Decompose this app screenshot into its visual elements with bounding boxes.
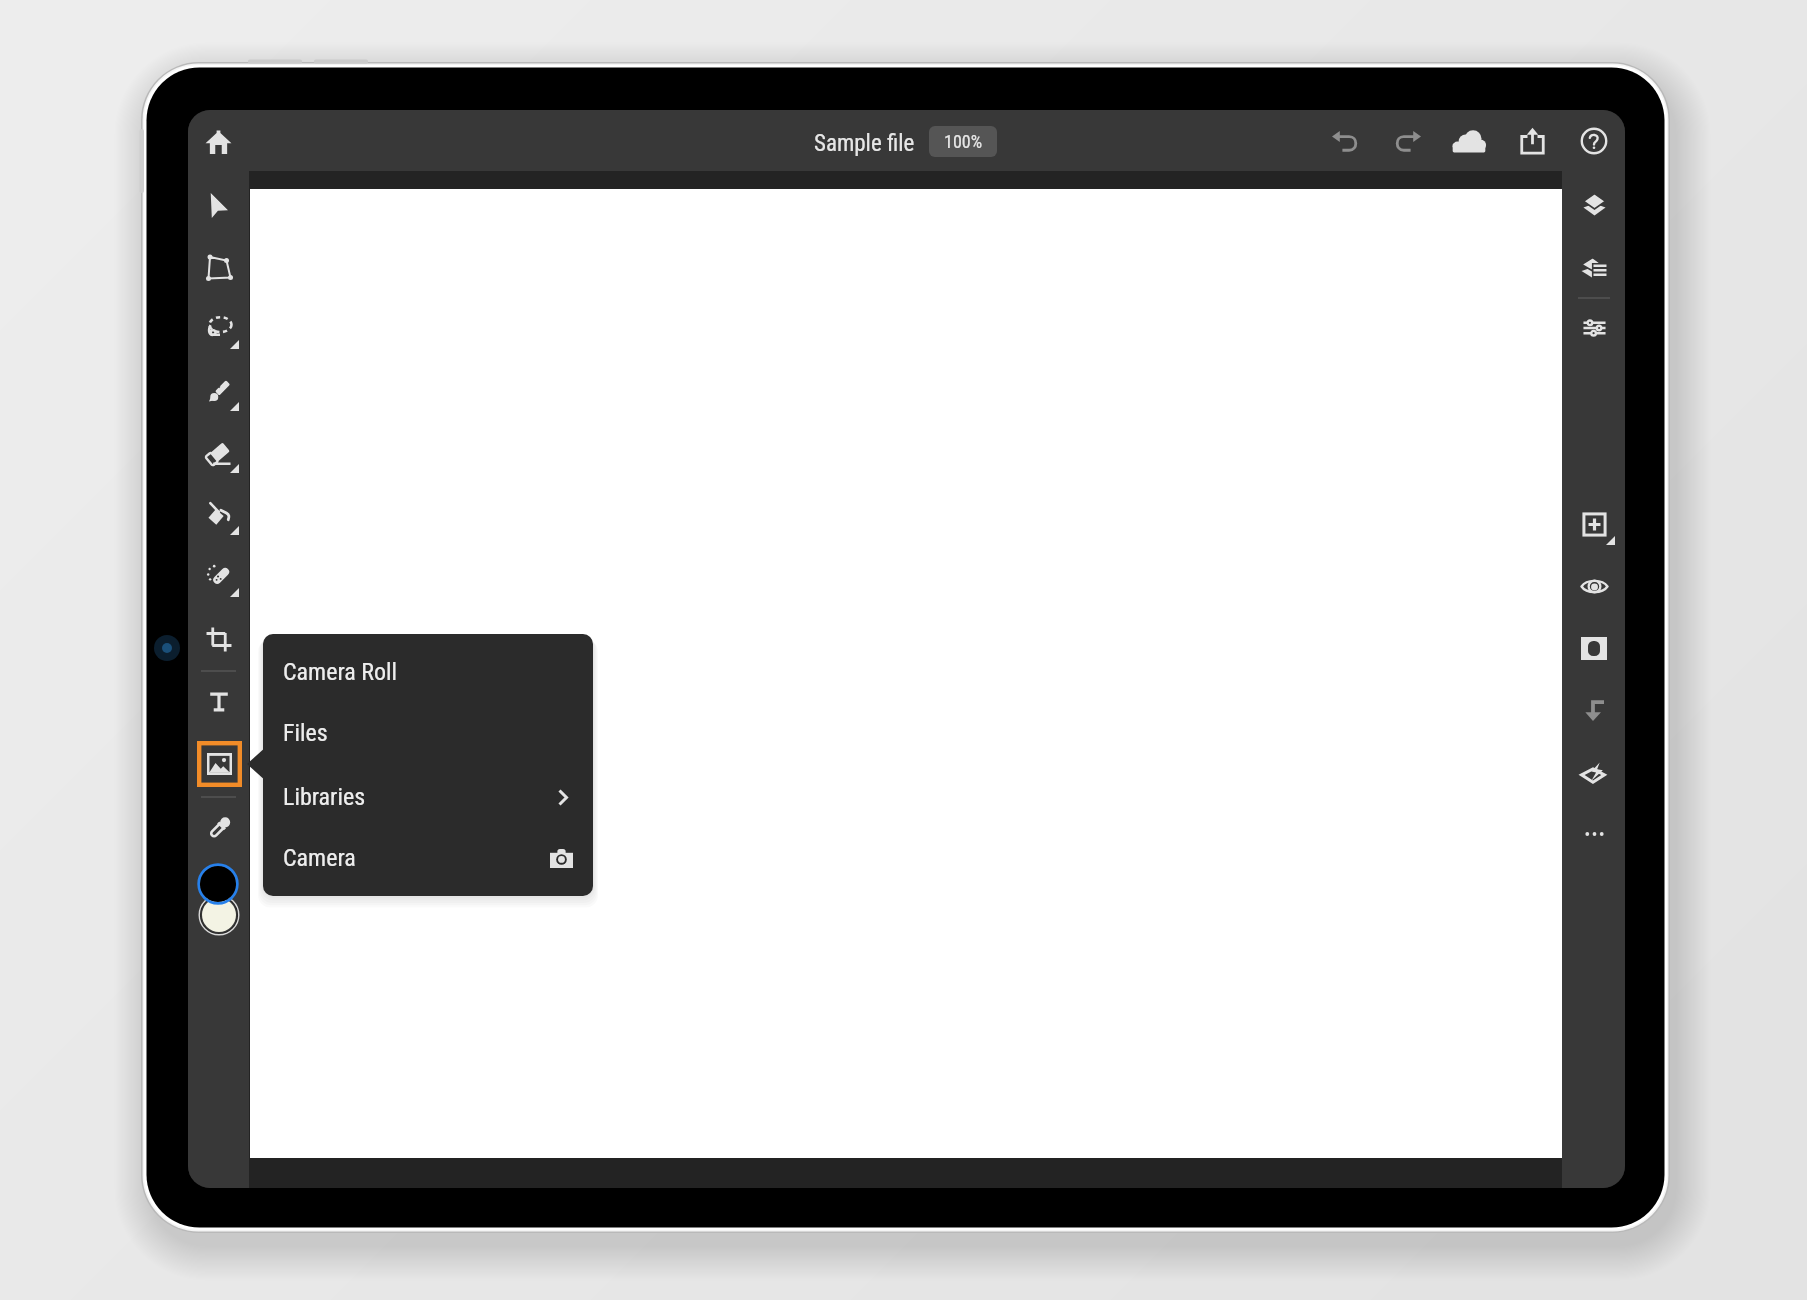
staticText: Camera Roll (283, 658, 398, 686)
button[interactable]: Undo (1321, 117, 1369, 165)
button[interactable]: Add layer (1569, 499, 1619, 549)
button[interactable]: Transform tool (194, 242, 244, 292)
button[interactable]: Cloud sync (1445, 117, 1493, 165)
button[interactable]: Layer mask (1569, 623, 1619, 673)
button[interactable]: Libraries (263, 771, 593, 823)
button[interactable]: Layer properties (1569, 242, 1619, 292)
button[interactable]: Sample file (814, 130, 915, 157)
button[interactable]: Fill tool (194, 489, 244, 539)
button[interactable]: Visibility (1569, 561, 1619, 611)
button[interactable]: Camera Roll (263, 646, 593, 698)
button[interactable]: Adjustments (1569, 303, 1619, 353)
staticText: Sample file (814, 130, 915, 157)
button[interactable]: Healing tool (194, 551, 244, 601)
button[interactable]: More options (1569, 809, 1619, 859)
button[interactable]: Brush tool (194, 365, 244, 415)
button[interactable]: Home (192, 116, 244, 168)
button[interactable]: Lasso tool (194, 303, 244, 353)
button[interactable]: Crop tool (194, 614, 244, 664)
button[interactable]: Colors (188, 856, 249, 940)
button[interactable]: Camera (263, 832, 593, 884)
button[interactable]: Share (1508, 117, 1556, 165)
button[interactable]: Redo (1384, 117, 1432, 165)
button[interactable]: Layers (1569, 179, 1619, 229)
staticText: Camera (283, 844, 356, 872)
button[interactable]: 100% (929, 126, 997, 157)
button[interactable]: Place image (197, 741, 242, 787)
button[interactable]: Clipping mask (1569, 685, 1619, 735)
button[interactable]: Help (1570, 117, 1618, 165)
button[interactable]: Eraser tool (194, 427, 244, 477)
staticText: Files (283, 719, 328, 747)
button[interactable]: Text tool (194, 677, 244, 727)
button[interactable]: Move tool (194, 180, 244, 230)
staticText: 100% (944, 131, 983, 152)
button[interactable]: Blend mode (1569, 747, 1619, 797)
button[interactable]: Eyedropper (194, 803, 244, 853)
staticText: Libraries (283, 783, 366, 811)
button[interactable]: Files (263, 707, 593, 759)
